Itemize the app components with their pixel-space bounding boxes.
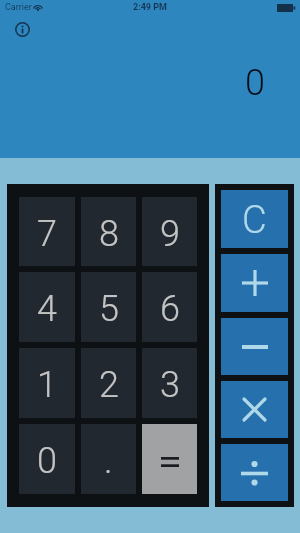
staticText: 1	[37, 364, 57, 406]
button[interactable]: 9	[142, 197, 197, 266]
staticText: 5	[99, 288, 119, 330]
button[interactable]: 8	[81, 197, 136, 266]
button[interactable]: Multiply	[221, 381, 288, 438]
staticText: C	[242, 198, 267, 243]
button[interactable]: 3	[142, 348, 197, 418]
staticText: 0	[37, 440, 57, 482]
staticText: 4	[37, 288, 57, 330]
button[interactable]: 6	[142, 272, 197, 342]
staticText: 3	[160, 364, 180, 406]
button[interactable]: Clear	[221, 190, 288, 248]
button[interactable]: 1	[19, 348, 75, 418]
button[interactable]: 4	[19, 272, 75, 342]
button[interactable]: .	[81, 424, 136, 494]
button[interactable]: 7	[19, 197, 75, 266]
button[interactable]: 5	[81, 272, 136, 342]
button[interactable]: Minus	[221, 318, 288, 375]
staticText: .	[104, 440, 113, 482]
staticText: 2:49 PM	[133, 2, 167, 13]
button[interactable]: 2	[81, 348, 136, 418]
staticText: 6	[160, 288, 180, 330]
button[interactable]: Info	[7, 14, 37, 44]
staticText: 9	[160, 213, 180, 255]
staticText: 7	[37, 213, 57, 255]
staticText: 2	[99, 364, 119, 406]
button[interactable]: Plus	[221, 254, 288, 312]
staticText: 0	[245, 62, 265, 104]
button[interactable]: Equals	[142, 424, 197, 494]
button[interactable]: 0	[19, 424, 75, 494]
staticText: Carrier	[5, 2, 32, 13]
button[interactable]: Divide	[221, 444, 288, 501]
staticText: 8	[99, 213, 119, 255]
